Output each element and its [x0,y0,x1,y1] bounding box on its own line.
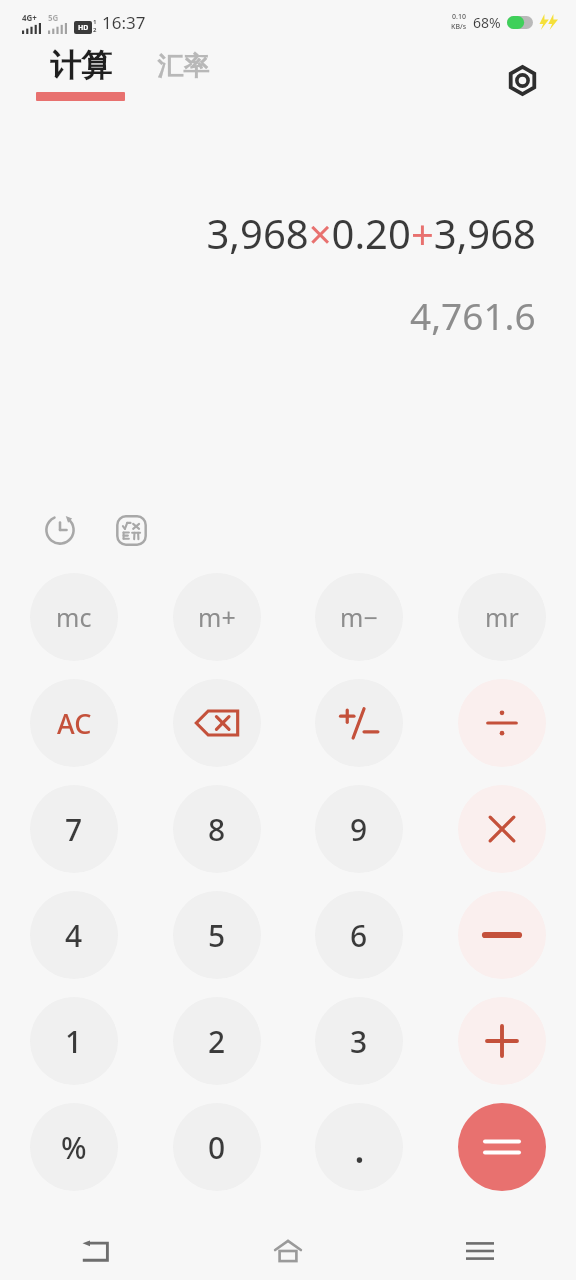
staticText: 2 [93,26,97,34]
button[interactable]: 7 [30,785,118,873]
staticText: 68% [473,13,501,32]
button[interactable]: Equals [458,1103,546,1191]
button[interactable]: 5 [173,891,261,979]
button[interactable]: 8 [173,785,261,873]
staticText: mr [485,600,519,634]
button[interactable]: 3 [315,997,403,1085]
button[interactable]: Settings [498,56,546,104]
button[interactable]: 9 [315,785,403,873]
staticText: 0.10 [452,12,466,22]
staticText: KB/s [451,22,467,32]
staticText: . [354,1120,365,1174]
button[interactable]: Plus [458,997,546,1085]
button[interactable]: % [30,1103,118,1191]
staticText: 计算 [50,46,112,85]
staticText: 9 [350,809,368,850]
staticText: % [61,1127,87,1168]
staticText: 6 [350,915,368,956]
button[interactable]: Divide [458,679,546,767]
button[interactable]: mr [458,573,546,661]
button[interactable]: Plus minus [315,679,403,767]
staticText: 8 [208,809,226,850]
button[interactable]: 2 [173,997,261,1085]
staticText: m+ [198,600,236,634]
staticText: 3,968×0.20+3,968 [206,206,536,260]
button[interactable]: 4 [30,891,118,979]
staticText: 汇率 [157,50,209,83]
button[interactable]: Multiply [458,785,546,873]
staticText: 1 [93,18,97,26]
staticText: 4 [65,915,83,956]
button[interactable]: 计算 [36,46,125,101]
staticText: m− [340,600,378,634]
staticText: mc [56,600,92,634]
button[interactable]: m− [315,573,403,661]
staticText: 4,761.6 [410,290,536,340]
staticText: 7 [65,809,83,850]
button[interactable]: All clear [30,679,118,767]
button[interactable]: Backspace [173,679,261,767]
button[interactable]: Home [261,1224,315,1278]
staticText: 0 [208,1127,226,1168]
button[interactable]: mc [30,573,118,661]
staticText: 16:37 [102,11,146,34]
button[interactable]: 0 [173,1103,261,1191]
button[interactable]: m+ [173,573,261,661]
staticText: 2 [208,1021,226,1062]
staticText: 1 [65,1021,83,1062]
button[interactable]: Back [69,1224,123,1278]
button[interactable]: . [315,1103,403,1191]
staticText: 5 [208,915,226,956]
button[interactable]: Recent apps [453,1224,507,1278]
button[interactable]: Scientific mode [105,504,157,556]
staticText: 3 [350,1021,368,1062]
staticText: 5G [48,12,59,23]
button[interactable]: 6 [315,891,403,979]
staticText: AC [57,705,92,742]
staticText: HD [78,23,89,33]
button[interactable]: 1 [30,997,118,1085]
button[interactable]: Minus [458,891,546,979]
button[interactable]: History [34,504,86,556]
button[interactable]: 汇率 [157,46,209,83]
staticText: 4G+ [22,12,37,23]
